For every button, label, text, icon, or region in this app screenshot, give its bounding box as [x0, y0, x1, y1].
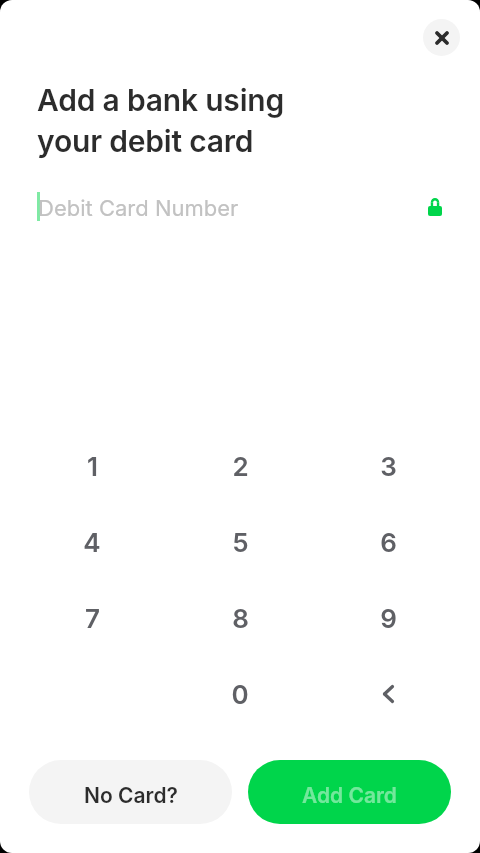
button[interactable]: 8: [166, 580, 314, 656]
button[interactable]: Debit Card Number: [0, 188, 480, 228]
staticText: 7: [85, 603, 100, 634]
staticText: 3: [380, 451, 397, 482]
staticText: 8: [232, 603, 249, 634]
staticText: 6: [380, 527, 397, 558]
button[interactable]: Close: [423, 19, 460, 56]
button[interactable]: 0: [166, 656, 314, 732]
staticText: 0: [231, 679, 249, 710]
staticText: Add Card: [302, 783, 397, 808]
staticText: Debit Card Number: [38, 195, 239, 222]
staticText: 5: [232, 527, 249, 558]
button[interactable]: 1: [18, 428, 166, 504]
button[interactable]: 3: [314, 428, 462, 504]
button[interactable]: 9: [314, 580, 462, 656]
button[interactable]: Add Card: [248, 760, 451, 824]
button[interactable]: 2: [166, 428, 314, 504]
staticText: 9: [380, 603, 397, 634]
staticText: 2: [232, 451, 249, 482]
button[interactable]: 4: [18, 504, 166, 580]
staticText: 4: [83, 527, 101, 558]
button[interactable]: 7: [18, 580, 166, 656]
button[interactable]: 5: [166, 504, 314, 580]
staticText: Add a bank using your debit card: [37, 82, 285, 159]
button[interactable]: Backspace: [314, 656, 462, 732]
button[interactable]: 6: [314, 504, 462, 580]
staticText: No Card?: [84, 783, 178, 808]
other: Secure: [428, 198, 442, 216]
button[interactable]: No Card?: [29, 760, 232, 824]
staticText: 1: [87, 451, 98, 482]
